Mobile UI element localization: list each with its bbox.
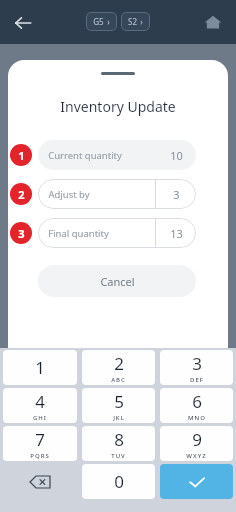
staticText: 13	[170, 226, 183, 241]
staticText: ›	[107, 16, 110, 27]
staticText: MNO	[188, 414, 206, 422]
button[interactable]: 4	[3, 388, 77, 423]
button[interactable]: 9	[160, 426, 233, 461]
staticText: Inventory Update	[60, 97, 176, 116]
staticText: ABC	[111, 376, 126, 384]
staticText: 1	[35, 356, 45, 379]
button[interactable]: 0	[82, 464, 155, 499]
staticText: ›	[140, 16, 143, 27]
staticText: 6	[192, 390, 202, 413]
staticText: S2	[128, 16, 137, 27]
staticText: 3	[173, 187, 180, 202]
button[interactable]: Adjust by	[38, 179, 196, 209]
button[interactable]: G5	[86, 12, 117, 31]
staticText: 1	[18, 148, 25, 163]
button[interactable]: Confirm	[160, 464, 233, 499]
button[interactable]: Final quantity	[38, 218, 196, 248]
button[interactable]: 5	[82, 388, 155, 423]
button[interactable]: 7	[3, 426, 77, 461]
button[interactable]: Back	[10, 10, 36, 36]
staticText: 3	[18, 226, 25, 241]
staticText: 4	[35, 390, 45, 413]
button[interactable]: 1	[3, 350, 77, 385]
button[interactable]: Backspace	[3, 464, 77, 499]
button[interactable]: S2	[121, 12, 150, 31]
staticText: JKL	[113, 414, 125, 422]
staticText: WXYZ	[186, 452, 207, 460]
button[interactable]: 2	[82, 350, 155, 385]
staticText: Cancel	[100, 274, 135, 289]
button[interactable]: Current quantity	[38, 140, 196, 170]
staticText: Adjust by	[48, 188, 90, 201]
staticText: PQRS	[30, 452, 50, 460]
staticText: 10	[170, 148, 183, 163]
staticText: 8	[114, 428, 124, 451]
staticText: TUV	[111, 452, 126, 460]
staticText: 3	[192, 352, 202, 375]
button[interactable]: Cancel	[38, 265, 196, 297]
staticText: G5	[93, 16, 104, 27]
staticText: GHI	[33, 414, 47, 422]
button[interactable]: Home	[202, 11, 224, 33]
staticText: DEF	[190, 376, 204, 384]
staticText: 0	[114, 470, 124, 493]
staticText: 7	[35, 428, 45, 451]
staticText: 2	[18, 187, 25, 202]
button[interactable]: 8	[82, 426, 155, 461]
staticText: Current quantity	[48, 149, 122, 162]
button[interactable]: 3	[160, 350, 233, 385]
staticText: 9	[192, 428, 202, 451]
staticText: 2	[114, 352, 124, 375]
staticText: 5	[114, 390, 124, 413]
button[interactable]: 6	[160, 388, 233, 423]
staticText: Final quantity	[48, 227, 109, 240]
